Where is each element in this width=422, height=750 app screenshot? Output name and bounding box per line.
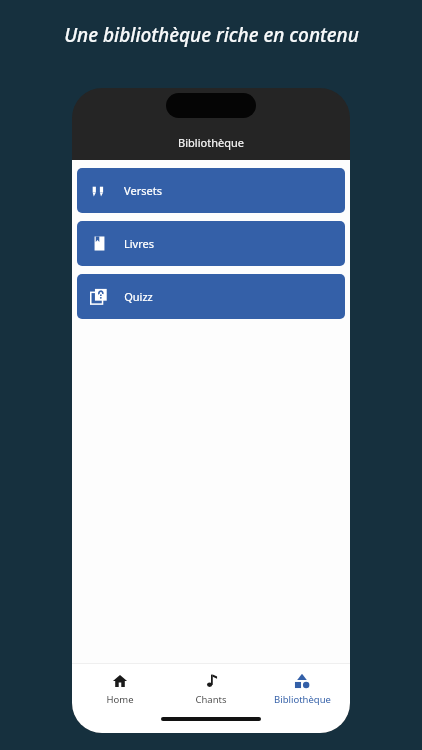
staticText: Bibliothèque [274, 693, 331, 706]
staticText: Home [106, 693, 134, 706]
button[interactable]: Quizz [77, 274, 345, 319]
staticText: Une bibliothèque riche en contenu [64, 22, 359, 48]
staticText: Versets [124, 183, 162, 198]
staticText: Quizz [124, 289, 153, 304]
button[interactable]: Bibliothèque [259, 671, 345, 708]
button[interactable]: Home [77, 671, 163, 708]
button[interactable]: Versets [77, 168, 345, 213]
staticText: Chants [195, 693, 227, 706]
staticText: Bibliothèque [178, 135, 244, 150]
button[interactable]: Livres [77, 221, 345, 266]
staticText: Livres [124, 236, 154, 251]
button[interactable]: Chants [168, 671, 254, 708]
